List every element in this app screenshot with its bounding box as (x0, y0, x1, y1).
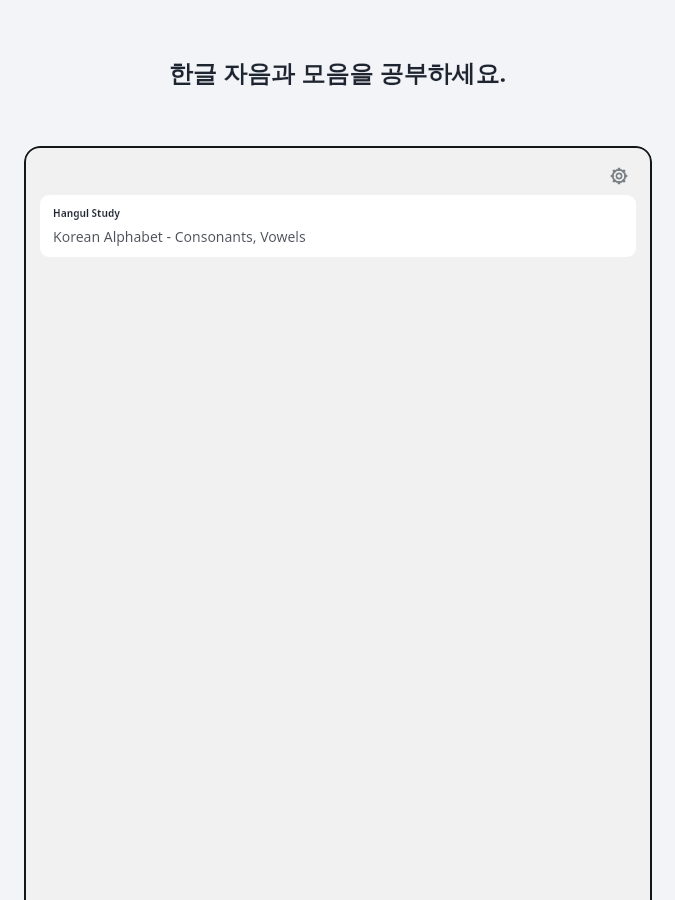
button[interactable]: Hangul Study (40, 195, 636, 257)
staticText: 한글 자음과 모음을 공부하세요. (0, 56, 675, 89)
staticText: Korean Alphabet - Consonants, Vowels (53, 227, 306, 246)
button[interactable]: Settings (605, 162, 633, 190)
staticText: Hangul Study (53, 206, 120, 220)
